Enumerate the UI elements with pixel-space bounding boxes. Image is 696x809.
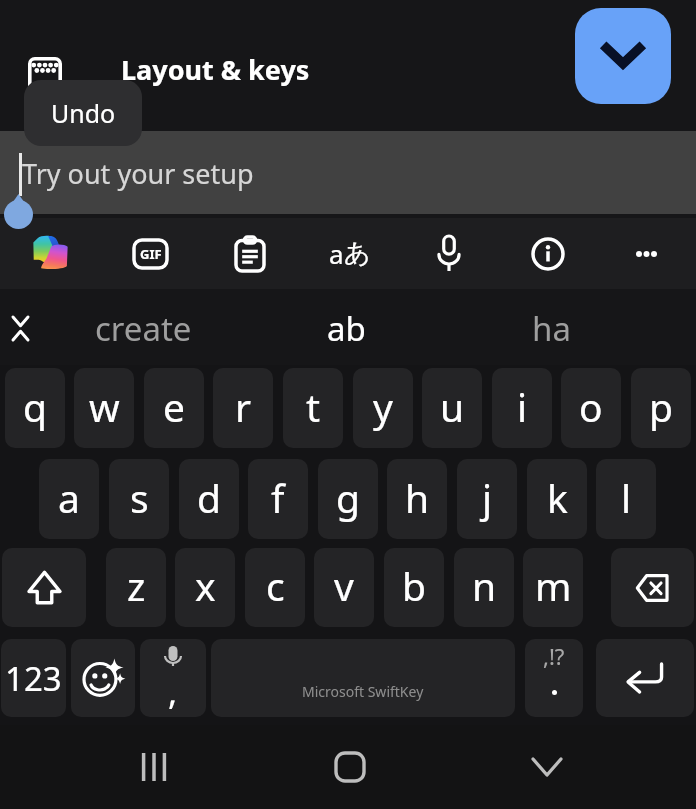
staticText: m	[535, 559, 572, 612]
button[interactable]: y	[353, 368, 413, 448]
button[interactable]: Recents	[114, 725, 194, 809]
button[interactable]: Undo	[24, 80, 142, 146]
staticText: k	[547, 471, 568, 524]
button[interactable]: h	[387, 459, 447, 539]
staticText: x	[195, 559, 216, 612]
staticText: r	[235, 380, 252, 433]
button[interactable]: x	[175, 548, 235, 627]
staticText: i	[517, 380, 528, 433]
staticText: b	[402, 559, 426, 612]
button[interactable]: GIF	[100, 218, 200, 289]
button[interactable]: Period and symbols	[525, 639, 583, 717]
button[interactable]: d	[179, 459, 239, 539]
staticText: u	[440, 380, 465, 433]
button[interactable]: n	[454, 548, 514, 627]
button[interactable]: Hide keyboard	[507, 725, 587, 809]
button[interactable]: j	[457, 459, 517, 539]
button[interactable]: More	[597, 218, 696, 289]
button[interactable]: Shift	[2, 548, 86, 627]
button[interactable]: Clipboard	[200, 218, 300, 289]
staticText: Try out your setup	[22, 155, 254, 192]
button[interactable]: t	[283, 368, 343, 448]
button[interactable]: m	[523, 548, 583, 627]
button[interactable]: q	[5, 368, 65, 448]
button[interactable]: Collapse	[575, 8, 671, 104]
button[interactable]: k	[527, 459, 587, 539]
staticText: ha	[532, 306, 571, 351]
button[interactable]: b	[384, 548, 444, 627]
button[interactable]: l	[596, 459, 656, 539]
button[interactable]: s	[109, 459, 169, 539]
button[interactable]: 123	[1, 639, 66, 717]
staticText: p	[649, 380, 673, 433]
staticText: d	[197, 471, 221, 524]
staticText: Undo	[51, 96, 116, 130]
staticText: GIF	[140, 245, 162, 263]
staticText: ,	[168, 669, 178, 715]
button[interactable]: create	[63, 291, 223, 365]
button[interactable]: v	[314, 548, 374, 627]
button[interactable]: Copilot	[0, 218, 100, 289]
button[interactable]: Info	[498, 218, 597, 289]
button[interactable]: f	[248, 459, 308, 539]
staticText: s	[130, 471, 149, 524]
staticText: z	[127, 559, 146, 612]
button[interactable]: p	[631, 368, 691, 448]
button[interactable]: w	[74, 368, 134, 448]
button[interactable]: Translate	[300, 218, 399, 289]
staticText: q	[23, 380, 47, 433]
staticText: h	[405, 471, 430, 524]
button[interactable]: c	[245, 548, 305, 627]
staticText: t	[306, 380, 321, 433]
button[interactable]: o	[561, 368, 621, 448]
button[interactable]: e	[144, 368, 204, 448]
staticText: Microsoft SwiftKey	[302, 682, 424, 701]
staticText: l	[621, 471, 632, 524]
button[interactable]: Keyboard	[28, 57, 62, 87]
button[interactable]: Backspace	[611, 548, 694, 627]
staticText: g	[336, 471, 360, 524]
button[interactable]: Comma and voice	[140, 639, 206, 717]
staticText: ,!?	[543, 641, 565, 671]
button[interactable]: Enter	[596, 639, 694, 717]
button[interactable]: r	[213, 368, 273, 448]
staticText: a	[329, 236, 344, 271]
button[interactable]: i	[492, 368, 552, 448]
button[interactable]: g	[318, 459, 378, 539]
staticText: n	[472, 559, 497, 612]
staticText: c	[266, 559, 285, 612]
button[interactable]: Collapse suggestions	[0, 291, 40, 365]
staticText: a	[58, 471, 80, 524]
staticText: y	[373, 380, 393, 433]
staticText: f	[271, 471, 285, 524]
button[interactable]: Space	[211, 639, 515, 717]
button[interactable]: a	[39, 459, 99, 539]
button[interactable]: z	[106, 548, 166, 627]
staticText: j	[482, 471, 493, 524]
staticText: o	[579, 380, 603, 433]
staticText: 123	[5, 656, 62, 701]
button[interactable]: Voice	[399, 218, 498, 289]
staticText: e	[163, 380, 185, 433]
button[interactable]: ab	[266, 291, 426, 365]
button[interactable]: Emoji	[71, 639, 135, 717]
staticText: あ	[344, 237, 371, 270]
staticText: w	[89, 380, 120, 433]
staticText: Layout & keys	[121, 51, 310, 88]
button[interactable]: ha	[471, 291, 631, 365]
button[interactable]: Home	[310, 725, 390, 809]
button[interactable]: u	[422, 368, 482, 448]
staticText: ab	[327, 306, 366, 351]
staticText: v	[334, 559, 354, 612]
staticText: create	[95, 306, 192, 351]
